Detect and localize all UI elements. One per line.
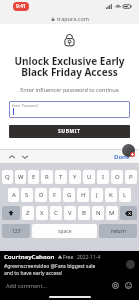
staticText: N (96, 209, 101, 217)
button[interactable]: H (77, 188, 89, 202)
button[interactable]: C (50, 206, 62, 220)
button[interactable]: L (119, 188, 131, 202)
staticText: F (53, 191, 57, 199)
button[interactable]: Next field (20, 152, 30, 162)
staticText: S (25, 191, 29, 199)
button[interactable]: E (28, 170, 39, 184)
button[interactable]: Done (112, 153, 132, 161)
button[interactable]: Q (2, 170, 13, 184)
staticText: #greenscreenvideo @Fans biggest sale and… (4, 263, 100, 276)
staticText: 9:41 (16, 3, 26, 10)
staticText: SUBMIT (58, 128, 81, 135)
button[interactable]: Add comment... (6, 282, 111, 289)
staticText: Enter Password (12, 103, 38, 108)
staticText: Add comment... (6, 282, 47, 289)
button[interactable]: X (36, 206, 48, 220)
button[interactable]: space (32, 224, 97, 238)
button[interactable]: D (35, 188, 47, 202)
button[interactable]: Mention (111, 281, 120, 290)
staticText: X (40, 209, 44, 217)
staticText: D (39, 191, 44, 199)
staticText: CourtneyCahoon (4, 253, 55, 261)
button[interactable]: return (99, 224, 137, 238)
button[interactable]: K (105, 188, 117, 202)
staticText: J (96, 191, 98, 199)
staticText: A (12, 191, 16, 199)
button[interactable]: O (111, 170, 123, 184)
staticText: W (18, 173, 24, 181)
staticText: Z (26, 209, 30, 217)
staticText: L (123, 191, 127, 199)
button[interactable]: Address bar trapura.com (0, 13, 139, 24)
staticText: trapura.com (57, 15, 89, 22)
staticText: R (45, 173, 49, 181)
button[interactable]: S (21, 188, 33, 202)
button[interactable]: Enter Password (9, 101, 130, 118)
button[interactable]: B (78, 206, 90, 220)
button[interactable]: J (91, 188, 103, 202)
button[interactable]: Previous field (7, 152, 17, 162)
button[interactable]: Sound (126, 260, 135, 269)
staticText: Y (73, 173, 77, 181)
staticText: U (87, 173, 92, 181)
button[interactable]: Emoji (124, 281, 133, 290)
button[interactable]: U (83, 170, 95, 184)
staticText: Q (5, 173, 10, 181)
button[interactable]: Backspace (120, 206, 137, 220)
staticText: M (109, 209, 115, 217)
button[interactable]: I (97, 170, 109, 184)
staticText: K (109, 191, 113, 199)
staticText: I (102, 173, 105, 181)
button[interactable]: P (125, 170, 137, 184)
staticText: G (67, 191, 72, 199)
button[interactable]: Y (69, 170, 81, 184)
button[interactable]: N (92, 206, 104, 220)
button[interactable]: R (41, 170, 53, 184)
button[interactable]: M (106, 206, 118, 220)
button[interactable]: T (55, 170, 67, 184)
button[interactable]: F (49, 188, 61, 202)
staticText: return (111, 228, 126, 235)
button[interactable]: G (63, 188, 75, 202)
button[interactable]: A (8, 188, 19, 202)
button[interactable]: Shift (2, 206, 20, 220)
staticText: 2022-11-4 (77, 254, 101, 261)
staticText: O (115, 173, 120, 181)
staticText: Free (63, 254, 74, 261)
staticText: V (68, 209, 72, 217)
staticText: Done (114, 153, 130, 161)
button[interactable]: W (15, 170, 26, 184)
staticText: B (82, 209, 86, 217)
staticText: T (59, 173, 63, 181)
staticText: C (54, 209, 58, 217)
staticText: H (81, 191, 86, 199)
button[interactable]: Z (22, 206, 34, 220)
staticText: Unlock Exclusive Early Black Friday Acce… (9, 54, 130, 79)
button[interactable]: SUBMIT (9, 125, 130, 138)
staticText: P (129, 173, 133, 181)
button[interactable]: Numbers (2, 224, 30, 238)
staticText: 123 (12, 228, 21, 235)
button[interactable]: Floating video bubble (122, 144, 135, 157)
staticText: Enter influencer password to continue (20, 86, 119, 93)
staticText: E (32, 173, 36, 181)
staticText: space (58, 228, 72, 235)
button[interactable]: V (64, 206, 76, 220)
